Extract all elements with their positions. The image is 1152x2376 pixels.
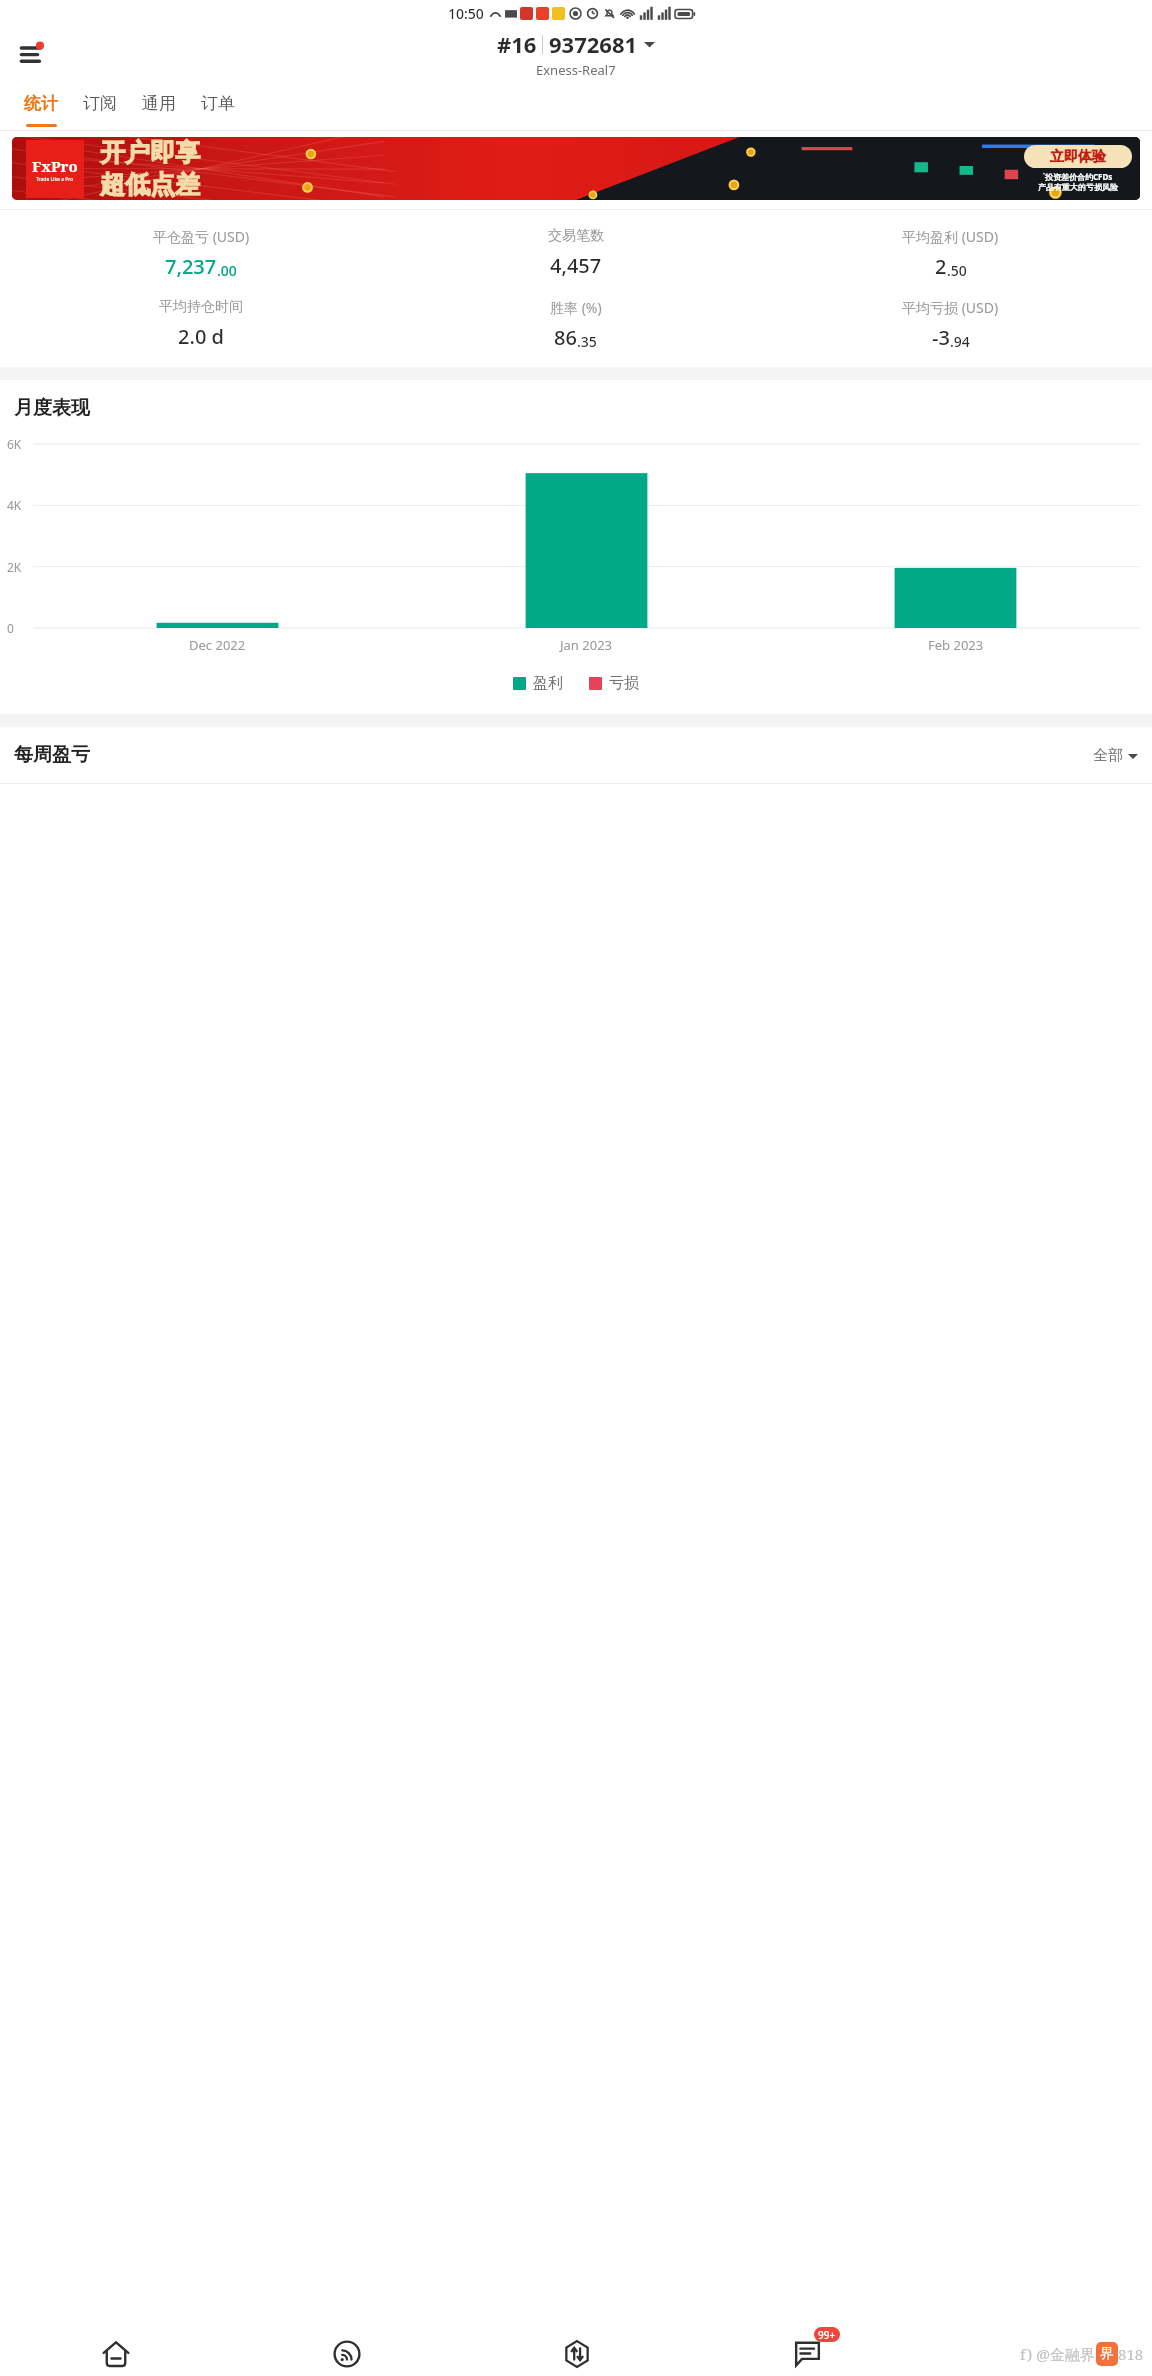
staticText: 818 [1118,2344,1144,2364]
staticText: 开户即享 [100,137,200,168]
button[interactable]: 订阅 [71,82,129,124]
button[interactable]: 统计 [12,82,70,124]
staticText: .50 [947,261,967,280]
button[interactable]: 通用 [130,82,188,124]
staticText: 胜率 (%) [550,298,602,317]
staticText: 通用 [142,93,176,114]
button[interactable]: FxPro [12,137,1140,200]
staticText: 盈利 [533,674,563,693]
staticText: 平均盈利 (USD) [902,227,999,246]
staticText: .35 [577,332,597,351]
staticText: 86 [554,324,577,351]
staticText: 全部 [1093,746,1123,765]
staticText: 平均持仓时间 [159,298,243,316]
staticText: ˙投资差价合约CFDs [1043,171,1113,182]
button[interactable]: 盈利 [513,674,563,693]
button[interactable]: Signals [231,2331,462,2376]
staticText: 订单 [201,93,235,114]
button[interactable]: 全部 [1093,746,1138,765]
staticText: 统计 [24,93,58,114]
staticText: 4,457 [550,252,602,279]
staticText: 产品有重大的亏损风险 [1038,182,1118,192]
button[interactable]: 订单 [189,82,247,124]
button[interactable]: 立即体验 [1024,145,1132,168]
staticText: Dec 2022 [189,636,246,654]
button[interactable]: Home [0,2331,231,2376]
button[interactable]: Menu [10,30,58,78]
staticText: Jan 2023 [560,636,613,654]
staticText: 7,237 [165,253,217,280]
staticText: 2 [935,253,947,280]
staticText: Exness-Real7 [536,61,616,79]
staticText: 2K [7,559,22,575]
staticText: Trade Like a Pro [36,176,74,183]
button[interactable]: Trade [462,2331,692,2376]
staticText: #16 [497,29,537,59]
staticText: 每周盈亏 [14,743,90,767]
staticText: 10:50 [448,4,484,23]
staticText: .00 [217,261,237,280]
staticText: f) @金融界 [1020,2344,1095,2364]
staticText: FxPro [32,156,78,176]
staticText: 平仓盈亏 (USD) [153,227,250,246]
staticText: 9372681 [549,29,638,59]
staticText: 2.0 d [178,323,224,350]
staticText: 6K [7,436,22,452]
button[interactable]: #16 [497,29,655,59]
staticText: 亏损 [609,674,639,693]
button[interactable]: Messages [784,2331,830,2376]
staticText: 99+ [818,2328,836,2342]
staticText: 4K [7,497,22,513]
staticText: 平均亏损 (USD) [902,298,999,317]
staticText: -3 [932,324,950,351]
staticText: 月度表现 [14,396,90,420]
staticText: 交易笔数 [548,227,604,245]
button[interactable]: 亏损 [589,674,639,693]
staticText: Feb 2023 [928,636,984,654]
staticText: .94 [950,332,970,351]
staticText: 立即体验 [1050,148,1106,166]
staticText: 订阅 [83,93,117,114]
staticText: 界 [1100,2345,1114,2363]
staticText: 超低点差 [100,169,200,200]
staticText: 0 [7,620,14,636]
